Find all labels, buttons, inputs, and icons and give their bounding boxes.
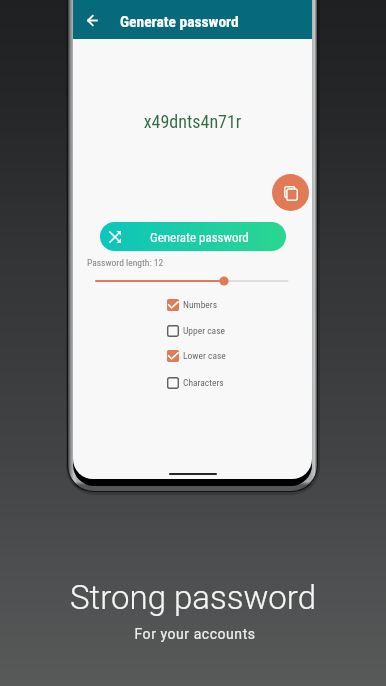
button[interactable]: Back xyxy=(78,6,106,34)
staticText: For your accounts xyxy=(2,626,386,642)
staticText: Strong password xyxy=(0,578,386,617)
button[interactable]: Numbers xyxy=(160,292,256,318)
staticText: x49dnts4n71r xyxy=(73,111,312,132)
staticText: Password length: 12 xyxy=(87,257,164,268)
staticText: Numbers xyxy=(183,299,217,310)
button[interactable]: Characters xyxy=(160,370,256,396)
button[interactable]: Generate password xyxy=(100,222,286,251)
staticText: Generate password xyxy=(120,13,239,31)
staticText: Characters xyxy=(183,377,224,388)
staticText: Generate password xyxy=(150,230,249,245)
button[interactable]: Copy password xyxy=(272,174,309,211)
button[interactable]: Upper case xyxy=(160,318,256,344)
staticText: Lower case xyxy=(183,350,226,361)
staticText: Upper case xyxy=(183,325,225,336)
button[interactable]: Lower case xyxy=(160,343,256,369)
